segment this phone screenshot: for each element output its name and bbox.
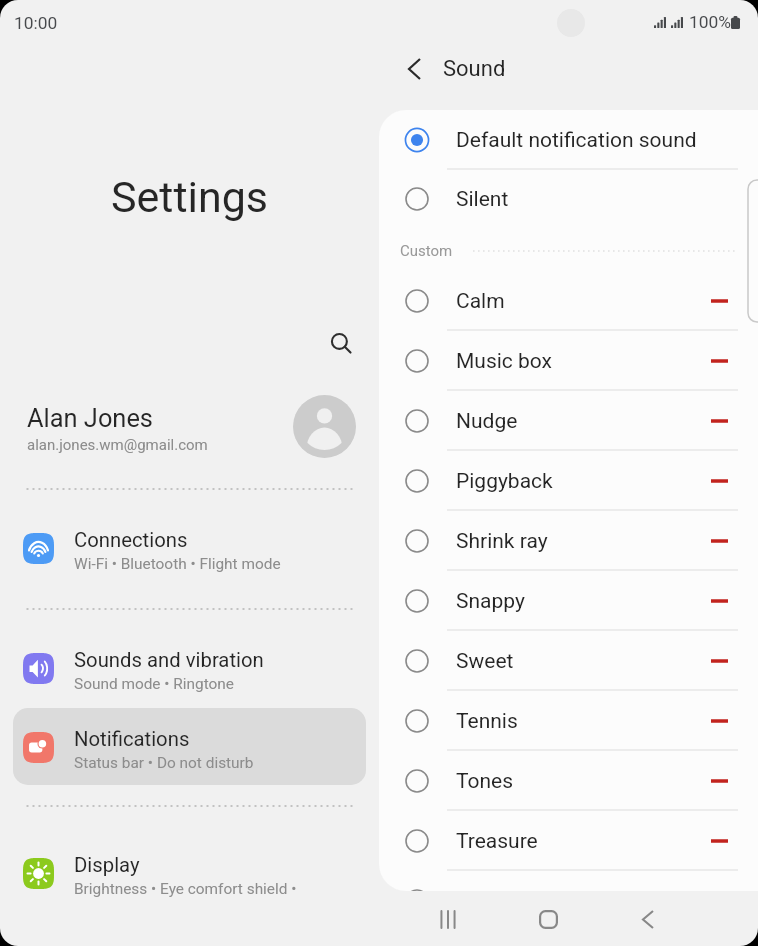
staticText: 100% bbox=[689, 12, 732, 32]
staticText: 10:00 bbox=[14, 13, 58, 33]
staticText: Piggyback bbox=[456, 469, 553, 494]
staticText: Silent bbox=[456, 187, 509, 212]
staticText: Nudge bbox=[456, 409, 518, 434]
button[interactable]: Music box bbox=[379, 331, 758, 391]
button[interactable]: Default notification sound bbox=[379, 110, 758, 170]
button[interactable]: Piggyback bbox=[379, 451, 758, 511]
button[interactable]: Tennis bbox=[379, 691, 758, 751]
staticText: alan.jones.wm@gmail.com bbox=[27, 436, 208, 454]
staticText: Notifications bbox=[74, 727, 190, 751]
button[interactable]: Nudge bbox=[379, 391, 758, 451]
staticText: Snappy bbox=[456, 589, 525, 614]
button[interactable]: Connections bbox=[0, 510, 379, 586]
button[interactable]: Treasure bbox=[379, 811, 758, 871]
staticText: Display bbox=[74, 853, 140, 877]
staticText: Brightness • Eye comfort shield • bbox=[74, 880, 297, 898]
staticText: Treasure bbox=[456, 829, 538, 854]
button[interactable]: Sounds and vibration bbox=[0, 630, 379, 706]
button[interactable]: Whistle bbox=[379, 871, 758, 891]
staticText: Connections bbox=[74, 528, 188, 552]
button[interactable]: Navigate up bbox=[396, 51, 432, 87]
button[interactable]: Home bbox=[520, 891, 576, 946]
staticText: Music box bbox=[456, 349, 553, 374]
button[interactable]: Sweet bbox=[379, 631, 758, 691]
staticText: Sound bbox=[443, 56, 506, 82]
staticText: Tennis bbox=[456, 709, 518, 734]
staticText: Calm bbox=[456, 289, 505, 314]
staticText: Shrink ray bbox=[456, 529, 548, 554]
button[interactable]: Alan Jones bbox=[0, 392, 379, 464]
staticText: Wi-Fi • Bluetooth • Flight mode bbox=[74, 555, 281, 573]
button[interactable]: Back bbox=[620, 891, 676, 946]
staticText: Custom bbox=[400, 242, 453, 260]
staticText: Status bar • Do not disturb bbox=[74, 754, 254, 772]
button[interactable]: Recent apps bbox=[420, 891, 476, 946]
button[interactable]: Shrink ray bbox=[379, 511, 758, 571]
staticText: Sound mode • Ringtone bbox=[74, 675, 235, 693]
staticText: Default notification sound bbox=[456, 128, 697, 153]
button[interactable]: Display bbox=[0, 835, 379, 911]
button[interactable]: Notifications bbox=[0, 709, 379, 785]
button[interactable]: Silent bbox=[379, 169, 758, 229]
button[interactable]: Tones bbox=[379, 751, 758, 811]
staticText: Sweet bbox=[456, 649, 514, 674]
staticText: Sounds and vibration bbox=[74, 648, 264, 672]
button[interactable]: Snappy bbox=[379, 571, 758, 631]
staticText: Tones bbox=[456, 769, 514, 794]
button[interactable]: Calm bbox=[379, 271, 758, 331]
staticText: Settings bbox=[0, 172, 379, 222]
button[interactable]: Search bbox=[319, 321, 363, 365]
staticText: Alan Jones bbox=[27, 403, 153, 433]
